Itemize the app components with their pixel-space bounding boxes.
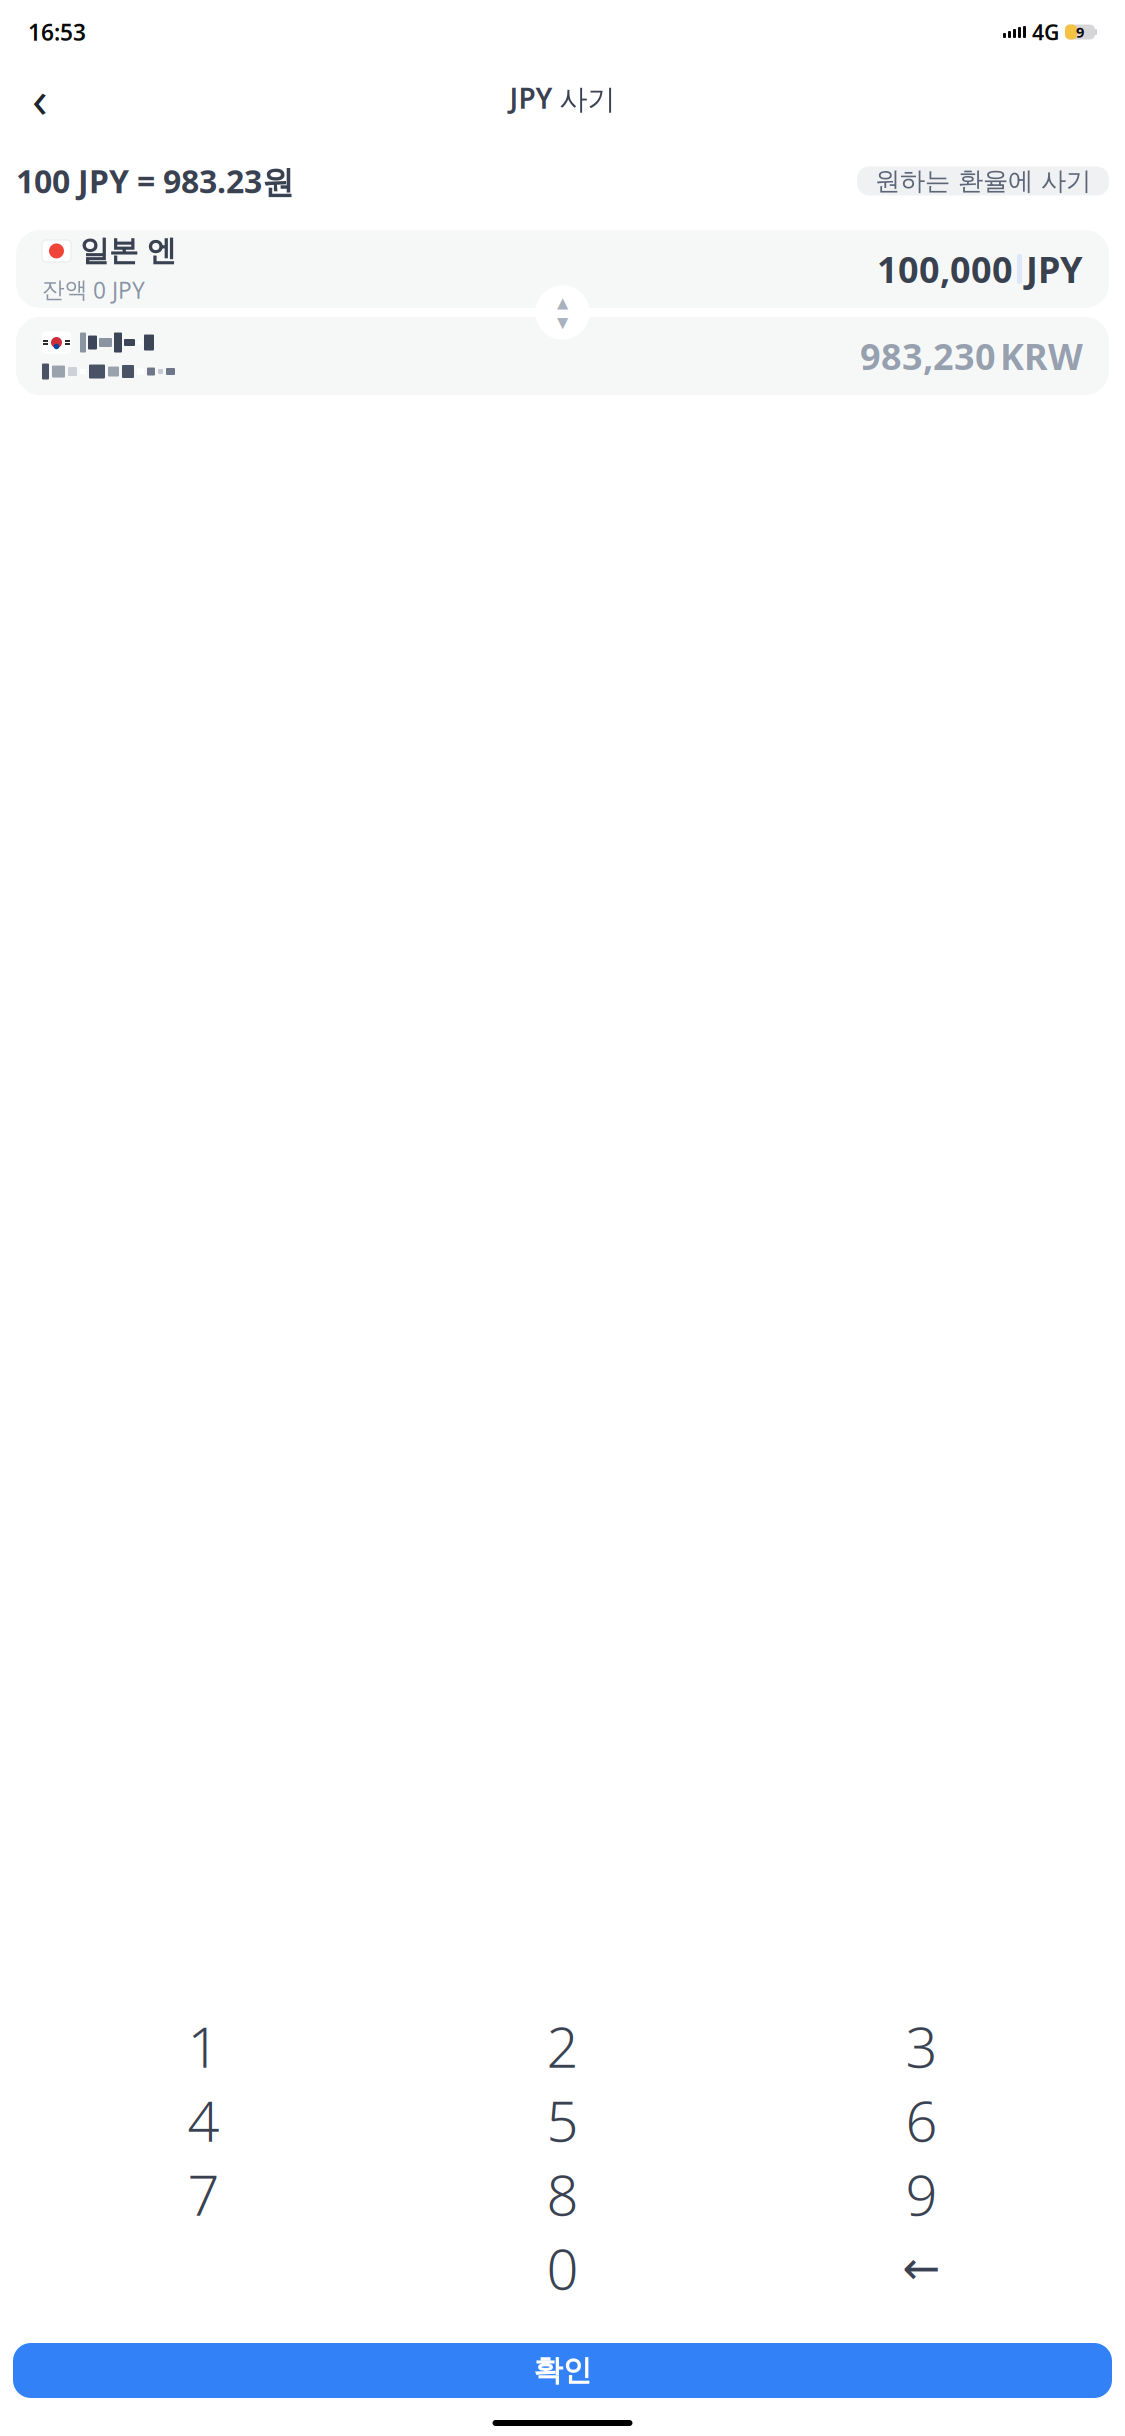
button[interactable]: 7 [24,2165,383,2223]
button[interactable]: Delete [742,2239,1101,2297]
staticText: 0 JPY [93,275,145,305]
staticText: 잔액 [42,276,88,304]
button[interactable]: 일본 엔 [16,230,1109,308]
staticText: 3 [905,2009,937,2083]
button[interactable]: 0 [383,2239,742,2297]
staticText: 원하는 환율에 사기 [875,165,1091,196]
staticText: 983,230 [860,332,996,380]
button[interactable]: Swap currencies [535,285,589,339]
staticText: 9 [1076,22,1084,42]
staticText: ‹ [32,64,48,132]
button[interactable]: 원하는 환율에 사기 [857,166,1109,195]
button[interactable]: 6 [742,2091,1101,2149]
staticText: JPY 사기 [509,79,615,117]
button[interactable]: Back [18,76,62,120]
staticText: 5 [546,2083,578,2157]
staticText: 100 JPY = 983.23원 [16,160,294,202]
staticText: KRW [1000,332,1083,380]
staticText: ▼ [557,314,568,331]
button[interactable]: 983,230 [16,317,1109,395]
button[interactable]: 2 [383,2017,742,2075]
button[interactable]: 9 [742,2165,1101,2223]
staticText: 8 [546,2157,578,2231]
staticText: 7 [187,2157,219,2231]
staticText: ← [902,2242,940,2294]
staticText: JPY [1026,245,1083,293]
staticText: 4G [1026,18,1065,46]
button[interactable]: 3 [742,2017,1101,2075]
staticText: 6 [905,2083,937,2157]
staticText: 16:53 [28,17,86,47]
staticText: 확인 [533,2352,591,2388]
button[interactable]: 5 [383,2091,742,2149]
staticText: ▲ [557,294,568,311]
button[interactable]: 8 [383,2165,742,2223]
staticText: 100,000 [877,245,1013,293]
staticText: 2 [546,2009,578,2083]
staticText: 1 [187,2009,219,2083]
staticText: 0 [546,2231,578,2305]
staticText: 4 [187,2083,219,2157]
button[interactable]: 1 [24,2017,383,2075]
button[interactable]: 확인 [13,2343,1112,2398]
staticText: 일본 엔 [80,233,176,269]
button[interactable]: 4 [24,2091,383,2149]
staticText: 9 [905,2157,937,2231]
